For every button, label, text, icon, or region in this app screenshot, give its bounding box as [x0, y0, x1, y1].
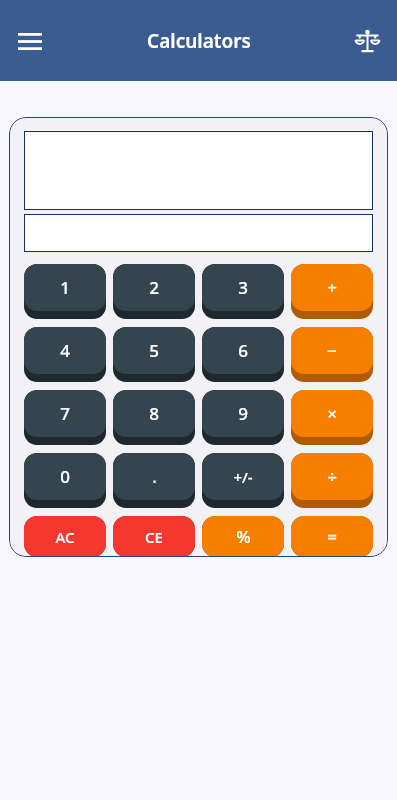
staticText: CE	[145, 527, 163, 547]
button[interactable]: .	[113, 453, 195, 508]
button[interactable]: 6	[202, 327, 284, 382]
button[interactable]: 1	[24, 264, 106, 319]
button[interactable]: %	[202, 516, 284, 557]
staticText: 9	[238, 402, 248, 425]
button[interactable]: +	[291, 264, 373, 319]
staticText: 1	[60, 276, 70, 299]
staticText: +	[327, 276, 337, 299]
staticText: %	[236, 525, 251, 548]
staticText: 8	[149, 402, 159, 425]
button[interactable]: 2	[113, 264, 195, 319]
staticText: 0	[60, 465, 70, 488]
button[interactable]: Open navigation menu	[9, 20, 51, 62]
button[interactable]: 9	[202, 390, 284, 445]
staticText: 6	[238, 339, 248, 362]
staticText: 4	[60, 339, 70, 362]
button[interactable]: Unit converter scales	[346, 20, 388, 62]
button[interactable]: Expression display	[24, 131, 373, 210]
button[interactable]: 4	[24, 327, 106, 382]
button[interactable]: +/-	[202, 453, 284, 508]
button[interactable]: Result display	[24, 214, 373, 252]
staticText: 5	[149, 339, 159, 362]
button[interactable]: 7	[24, 390, 106, 445]
staticText: +/-	[233, 467, 253, 487]
button[interactable]: 5	[113, 327, 195, 382]
staticText: 7	[60, 402, 70, 425]
button[interactable]: −	[291, 327, 373, 382]
button[interactable]: ×	[291, 390, 373, 445]
button[interactable]: =	[291, 516, 373, 557]
button[interactable]: CE	[113, 516, 195, 557]
staticText: .	[152, 465, 157, 488]
button[interactable]: 0	[24, 453, 106, 508]
staticText: Calculators	[147, 28, 251, 54]
button[interactable]: 8	[113, 390, 195, 445]
staticText: ×	[327, 402, 337, 425]
button[interactable]: AC	[24, 516, 106, 557]
staticText: ÷	[327, 465, 337, 488]
button[interactable]: 3	[202, 264, 284, 319]
staticText: AC	[55, 527, 75, 547]
staticText: =	[327, 525, 337, 548]
staticText: 2	[149, 276, 159, 299]
staticText: 3	[238, 276, 248, 299]
staticText: −	[327, 339, 337, 362]
button[interactable]: ÷	[291, 453, 373, 508]
